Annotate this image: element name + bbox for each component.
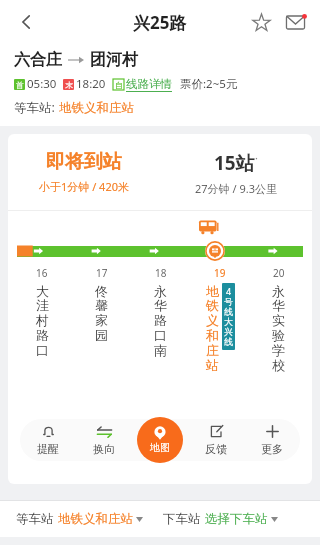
- staticText: 提醒: [37, 442, 59, 456]
- button[interactable]: 18: [131, 266, 190, 359]
- button[interactable]: Back: [6, 2, 46, 42]
- button[interactable]: 20: [249, 266, 308, 374]
- staticText: 选择下车站: [205, 511, 268, 527]
- staticText: 等车站: [16, 511, 54, 527]
- button[interactable]: Messages: [278, 5, 312, 39]
- staticText: 地铁义和庄站: [59, 100, 134, 116]
- staticText: 17: [96, 266, 108, 280]
- staticText: 永华实验学校: [271, 283, 286, 374]
- button[interactable]: 换向: [76, 421, 132, 460]
- staticText: 15站: [214, 150, 255, 176]
- staticText: 20: [273, 266, 285, 280]
- staticText: 地图: [150, 441, 170, 454]
- staticText: 16: [36, 266, 48, 280]
- staticText: 即将到站: [46, 150, 122, 174]
- staticText: 更多: [261, 442, 283, 456]
- button[interactable]: 地图: [137, 417, 183, 463]
- staticText: 永华路口南: [153, 283, 168, 359]
- staticText: 自: [115, 80, 123, 90]
- staticText: 地铁义和庄站: [58, 511, 133, 527]
- staticText: 线路详情: [126, 77, 172, 91]
- staticText: 换向: [93, 442, 115, 456]
- staticText: 佟馨家园: [94, 283, 109, 344]
- staticText: 末: [65, 80, 73, 90]
- staticText: 18: [155, 266, 167, 280]
- button[interactable]: 提醒: [20, 420, 76, 460]
- button[interactable]: Favorite: [244, 5, 278, 39]
- staticText: 大洼村路口: [35, 283, 50, 359]
- staticText: 05:30: [27, 76, 57, 92]
- staticText: 4号线大兴线: [223, 285, 234, 348]
- staticText: 首: [16, 80, 24, 90]
- staticText: 18:20: [76, 76, 106, 92]
- staticText: 地铁义和庄站: [205, 283, 220, 374]
- button[interactable]: 下车站: [163, 511, 278, 527]
- staticText: 六合庄: [14, 50, 62, 70]
- button[interactable]: 等车站: [16, 511, 143, 527]
- staticText: 27分钟 / 9.3公里: [195, 181, 277, 196]
- staticText: 19: [214, 266, 226, 280]
- staticText: 团河村: [90, 50, 138, 70]
- staticText: 反馈: [205, 442, 227, 456]
- button[interactable]: 17: [72, 266, 131, 344]
- staticText: 下车站: [163, 511, 201, 527]
- staticText: 票价:2~5元: [180, 76, 238, 92]
- staticText: 兴25路: [133, 11, 187, 34]
- button[interactable]: 16: [12, 266, 72, 359]
- button[interactable]: 反馈: [188, 420, 244, 460]
- staticText: 小于1分钟 / 420米: [39, 179, 129, 194]
- button[interactable]: 自: [113, 77, 172, 92]
- staticText: ·: [255, 150, 258, 165]
- staticText: 等车站:: [14, 99, 55, 116]
- button[interactable]: 19: [190, 266, 249, 374]
- button[interactable]: 更多: [244, 420, 300, 460]
